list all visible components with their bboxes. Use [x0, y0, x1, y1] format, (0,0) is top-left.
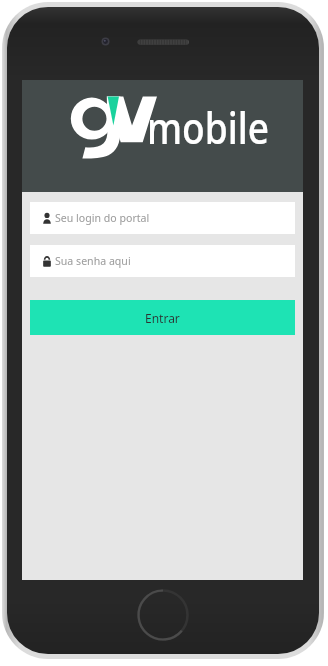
staticText: Seu login do portal: [55, 211, 150, 225]
staticText: Sua senha aqui: [55, 254, 131, 268]
staticText: Entrar: [145, 310, 180, 326]
button[interactable]: Sua senha aqui: [30, 245, 295, 277]
button[interactable]: Seu login do portal: [30, 202, 295, 234]
staticText: mobile: [147, 98, 269, 157]
button[interactable]: Entrar: [30, 300, 295, 335]
